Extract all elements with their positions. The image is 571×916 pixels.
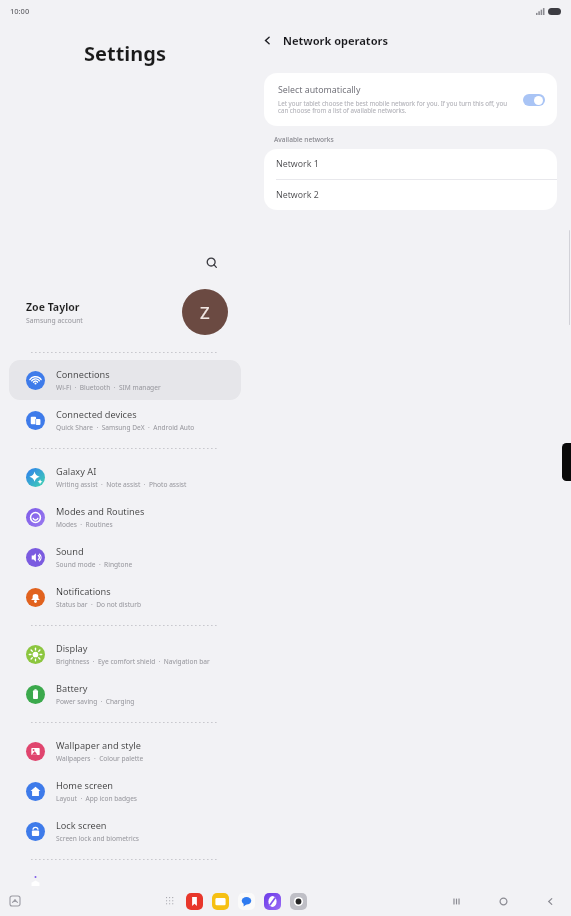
button[interactable]: Home screen — [9, 771, 241, 811]
staticText: Z — [200, 301, 210, 324]
button[interactable]: Select automatically — [264, 73, 557, 126]
button[interactable]: Galaxy AI — [9, 457, 241, 497]
staticText: Samsung account — [26, 316, 83, 325]
staticText: Galaxy AI — [56, 465, 97, 478]
staticText: Wi-Fi · Bluetooth · SIM manager — [56, 383, 161, 392]
button[interactable]: Back — [539, 890, 561, 912]
button[interactable]: Home — [492, 890, 514, 912]
staticText: Modes and Routines — [56, 505, 145, 518]
button[interactable]: App 0 — [186, 893, 203, 910]
button[interactable]: App 3 — [264, 893, 281, 910]
staticText: Connections — [56, 368, 110, 381]
staticText: Available networks — [274, 135, 334, 144]
button[interactable]: Search — [199, 250, 225, 276]
staticText: Quick Share · Samsung DeX · Android Auto — [56, 423, 195, 432]
button[interactable]: Notifications — [9, 577, 241, 617]
button[interactable]: Notifications — [6, 892, 24, 910]
staticText: Network 1 — [276, 158, 319, 170]
button[interactable]: Security and privacy — [9, 868, 241, 886]
staticText: Home screen — [56, 779, 113, 792]
staticText: Lock screen — [56, 819, 107, 832]
staticText: Wallpapers · Colour palette — [56, 754, 144, 763]
staticText: Connected devices — [56, 408, 137, 421]
staticText: Let your tablet choose the best mobile n… — [278, 99, 515, 115]
button[interactable]: App 4 — [290, 893, 307, 910]
staticText: Power saving · Charging — [56, 697, 135, 706]
button[interactable]: Sound — [9, 537, 241, 577]
staticText: Display — [56, 642, 88, 655]
staticText: Battery — [56, 682, 88, 695]
button[interactable]: Connections — [9, 360, 241, 400]
staticText: Select automatically — [278, 84, 361, 96]
button[interactable]: Recents — [445, 890, 467, 912]
button[interactable]: App 1 — [212, 893, 229, 910]
button[interactable]: Modes and Routines — [9, 497, 241, 537]
button[interactable]: Network 2 — [264, 180, 557, 210]
button[interactable]: Battery — [9, 674, 241, 714]
button[interactable]: Wallpaper and style — [9, 731, 241, 771]
staticText: Screen lock and biometrics — [56, 834, 139, 843]
button[interactable]: All apps — [161, 892, 179, 910]
button[interactable]: Lock screen — [9, 811, 241, 851]
button[interactable]: Zoe Taylor — [0, 289, 250, 335]
staticText: Brightness · Eye comfort shield · Naviga… — [56, 657, 210, 666]
staticText: Modes · Routines — [56, 520, 113, 529]
staticText: Notifications — [56, 585, 111, 598]
button[interactable]: Network 1 — [264, 149, 557, 179]
button[interactable]: Connected devices — [9, 400, 241, 440]
staticText: Zoe Taylor — [26, 300, 80, 314]
staticText: 10:00 — [10, 6, 30, 16]
button[interactable]: App 2 — [238, 893, 255, 910]
staticText: Settings — [84, 40, 166, 67]
staticText: Sound — [56, 545, 84, 558]
staticText: Network 2 — [276, 189, 319, 201]
staticText: Layout · App icon badges — [56, 794, 138, 803]
staticText: Status bar · Do not disturb — [56, 600, 141, 609]
button[interactable]: Display — [9, 634, 241, 674]
staticText: Wallpaper and style — [56, 739, 141, 752]
staticText: Sound mode · Ringtone — [56, 560, 133, 569]
button[interactable]: Select automatically toggle — [523, 94, 545, 106]
staticText: Writing assist · Note assist · Photo ass… — [56, 480, 187, 489]
button[interactable]: Back — [256, 29, 278, 51]
button[interactable]: Edge panel — [562, 443, 571, 481]
staticText: Network operators — [283, 33, 388, 48]
